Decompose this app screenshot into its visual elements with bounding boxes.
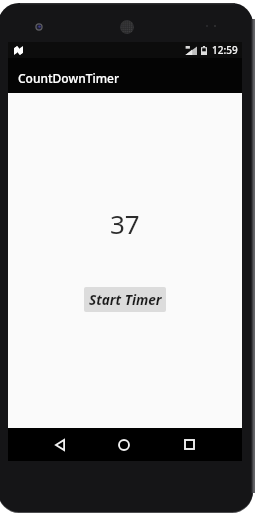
button[interactable]: Start Timer bbox=[84, 287, 166, 312]
staticText: Start Timer bbox=[89, 290, 162, 309]
staticText: CountDownTimer bbox=[18, 70, 119, 86]
button[interactable]: Recent apps bbox=[168, 428, 210, 461]
button[interactable]: Back bbox=[39, 428, 81, 461]
staticText: 37 bbox=[110, 206, 140, 241]
staticText: 12:59 bbox=[212, 43, 238, 57]
button[interactable]: Home bbox=[103, 428, 145, 461]
